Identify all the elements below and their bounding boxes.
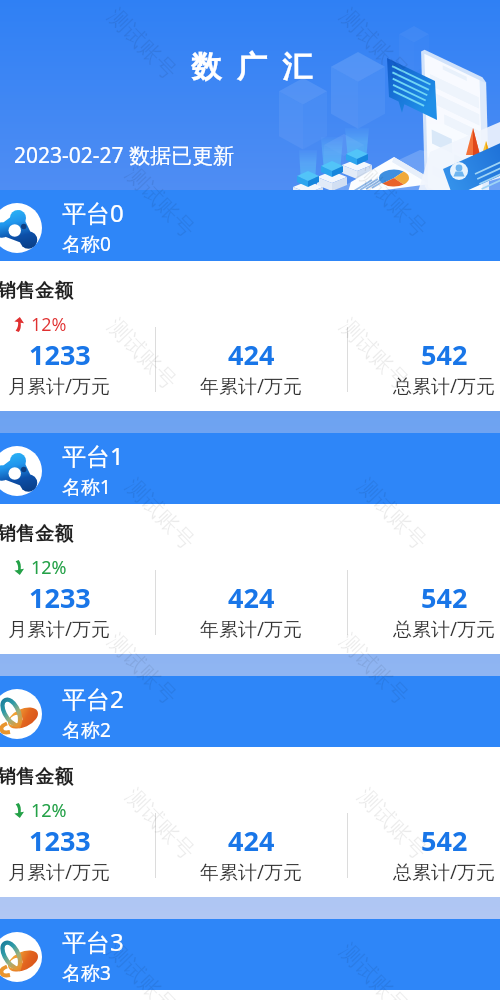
staticText: 名称1 xyxy=(62,474,111,500)
staticText: 年累计/万元 xyxy=(200,616,303,642)
staticText: 销售金额 xyxy=(0,279,73,303)
staticText: 名称2 xyxy=(62,717,111,743)
staticText: 1233 xyxy=(29,822,91,859)
staticText: 平台1 xyxy=(62,439,124,472)
staticText: 测试账号 xyxy=(101,938,183,1000)
button[interactable]: 平台3 xyxy=(0,919,500,1000)
staticText: 测试账号 xyxy=(351,161,433,243)
staticText: 销售金额 xyxy=(0,522,73,546)
staticText: 测试账号 xyxy=(333,938,415,1000)
staticText: 424 xyxy=(228,336,275,373)
staticText: 平台3 xyxy=(62,925,124,958)
staticText: 1233 xyxy=(29,336,91,373)
staticText: 测试账号 xyxy=(101,3,183,85)
staticText: 年累计/万元 xyxy=(200,373,303,399)
button[interactable]: 平台1 xyxy=(0,433,500,654)
staticText: 542 xyxy=(421,822,468,859)
staticText: 测试账号 xyxy=(333,313,415,395)
staticText: 12% xyxy=(31,798,67,823)
staticText: 年累计/万元 xyxy=(200,859,303,885)
staticText: 测试账号 xyxy=(119,783,201,865)
staticText: 数 广 汇 xyxy=(191,45,317,86)
staticText: 424 xyxy=(228,579,275,616)
staticText: 测试账号 xyxy=(333,628,415,710)
staticText: 月累计/万元 xyxy=(8,859,111,885)
button[interactable]: 平台0 xyxy=(0,190,500,411)
staticText: 测试账号 xyxy=(119,161,201,243)
staticText: 1233 xyxy=(29,579,91,616)
staticText: 平台2 xyxy=(62,682,124,715)
staticText: 542 xyxy=(421,336,468,373)
staticText: 平台0 xyxy=(62,196,124,229)
staticText: 名称0 xyxy=(62,231,111,257)
staticText: 2023-02-27 数据已更新 xyxy=(14,141,235,170)
staticText: 测试账号 xyxy=(119,473,201,555)
staticText: 测试账号 xyxy=(351,473,433,555)
button[interactable]: 平台2 xyxy=(0,676,500,897)
staticText: 542 xyxy=(421,579,468,616)
staticText: 月累计/万元 xyxy=(8,373,111,399)
staticText: 总累计/万元 xyxy=(393,373,496,399)
staticText: 测试账号 xyxy=(101,313,183,395)
staticText: 测试账号 xyxy=(101,628,183,710)
staticText: 测试账号 xyxy=(333,3,415,85)
staticText: 月累计/万元 xyxy=(8,616,111,642)
staticText: 424 xyxy=(228,822,275,859)
staticText: 12% xyxy=(31,555,67,580)
staticText: 总累计/万元 xyxy=(393,616,496,642)
staticText: 销售金额 xyxy=(0,765,73,789)
staticText: 总累计/万元 xyxy=(393,859,496,885)
staticText: 测试账号 xyxy=(351,783,433,865)
staticText: 名称3 xyxy=(62,960,111,986)
staticText: 12% xyxy=(31,312,67,337)
